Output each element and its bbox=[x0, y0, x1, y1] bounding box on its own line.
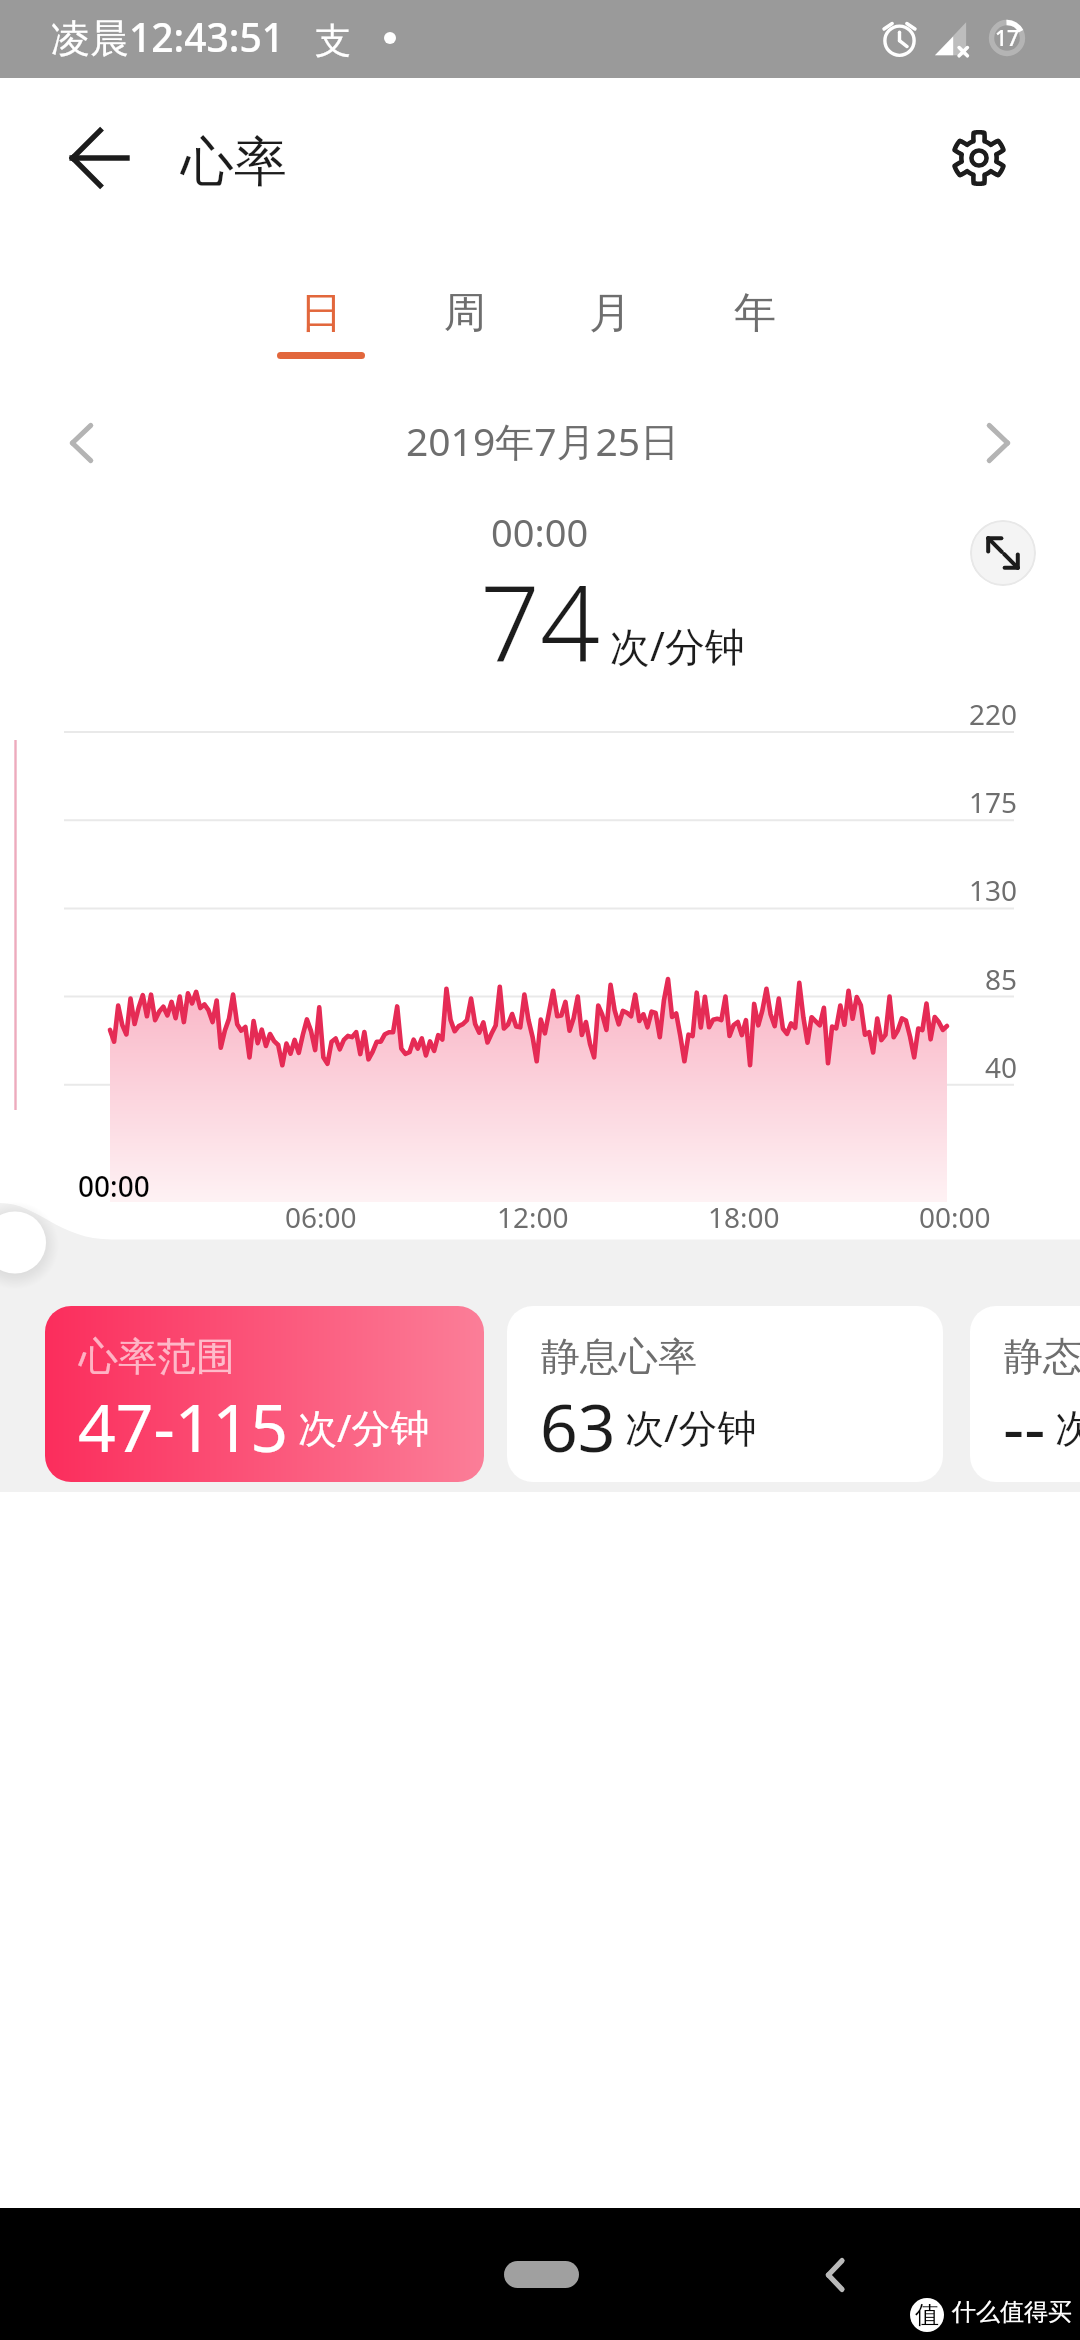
button[interactable]: Settings bbox=[933, 112, 1025, 204]
button[interactable]: 年 bbox=[682, 237, 827, 367]
staticText: 220 bbox=[969, 695, 1018, 733]
staticText: -- bbox=[1003, 1381, 1046, 1471]
staticText: 静息心率 bbox=[541, 1332, 697, 1381]
button[interactable]: 静态心率 bbox=[970, 1306, 1080, 1482]
staticText: 日 bbox=[300, 287, 342, 340]
button[interactable]: 静息心率 bbox=[507, 1306, 943, 1482]
button[interactable]: Assistive touch bbox=[0, 1211, 31, 1273]
staticText: 次/分钟 bbox=[298, 1400, 430, 1453]
staticText: 40 bbox=[985, 1048, 1018, 1086]
staticText: 00:00 bbox=[78, 1167, 150, 1205]
staticText: 00:00 bbox=[919, 1198, 991, 1236]
staticText: 85 bbox=[985, 960, 1018, 998]
button[interactable]: 心率范围 bbox=[45, 1306, 484, 1482]
staticText: 支 bbox=[315, 18, 351, 63]
staticText: 心率 bbox=[181, 129, 287, 196]
staticText: 次/分钟 bbox=[625, 1400, 757, 1453]
staticText: 月 bbox=[589, 287, 631, 340]
staticText: 静态心率 bbox=[1004, 1332, 1080, 1381]
staticText: 凌晨12:43:51 bbox=[51, 10, 285, 63]
button[interactable]: 月 bbox=[537, 237, 682, 367]
button[interactable]: Next day bbox=[956, 401, 1040, 485]
staticText: 周 bbox=[444, 287, 486, 340]
staticText: 63 bbox=[540, 1381, 616, 1471]
staticText: 什么值得买 bbox=[952, 2297, 1072, 2327]
staticText: 次/分钟 bbox=[610, 618, 745, 673]
staticText: 12:00 bbox=[497, 1198, 569, 1236]
staticText: 47-115 bbox=[78, 1381, 289, 1471]
staticText: 06:00 bbox=[285, 1198, 357, 1236]
staticText: 值 bbox=[915, 2300, 939, 2330]
staticText: 00:00 bbox=[491, 506, 589, 558]
staticText: 175 bbox=[969, 783, 1018, 821]
staticText: 年 bbox=[734, 287, 776, 340]
button[interactable]: 日 bbox=[249, 237, 393, 367]
button[interactable]: Back bbox=[54, 113, 144, 203]
button[interactable]: Expand chart bbox=[970, 520, 1036, 586]
button[interactable]: Previous day bbox=[40, 401, 124, 485]
button[interactable]: 周 bbox=[393, 237, 537, 367]
button[interactable]: Home bbox=[504, 2261, 579, 2288]
staticText: 17 bbox=[995, 24, 1020, 53]
staticText: 130 bbox=[969, 871, 1018, 909]
staticText: 心率范围 bbox=[79, 1332, 235, 1381]
button[interactable]: Back bbox=[796, 2234, 878, 2316]
staticText: 74 bbox=[480, 550, 600, 693]
staticText: 18:00 bbox=[708, 1198, 780, 1236]
staticText: 2019年7月25日 bbox=[406, 414, 680, 467]
staticText: 次/分钟 bbox=[1055, 1400, 1080, 1453]
